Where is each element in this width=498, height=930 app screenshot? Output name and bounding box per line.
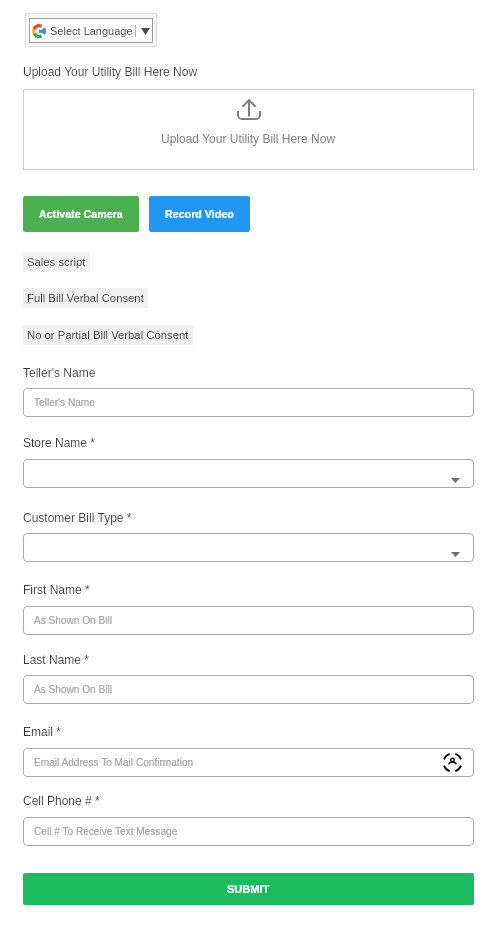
button[interactable]: No or Partial Bill Verbal Consent [23,325,193,345]
staticText: Sales script [27,256,86,269]
staticText: As Shown On Bill [34,684,112,695]
staticText: Store Name * [23,436,96,449]
staticText: First Name * [23,583,90,596]
button[interactable]: Teller's Name [23,388,474,417]
staticText: Select Language [50,25,133,37]
staticText: SUBMIT [227,883,270,895]
staticText: Upload Your Utility Bill Here Now [161,132,336,145]
button[interactable]: Email Address To Mail Confirmation [23,748,474,777]
staticText: Cell # To Receive Text Message [34,826,178,837]
button[interactable]: Open dropdown [23,459,474,488]
button[interactable]: SUBMIT [23,873,474,905]
button[interactable]: Select Language [25,13,157,47]
staticText: Record Video [165,208,234,220]
staticText: As Shown On Bill [34,615,112,626]
button[interactable]: Sales script [23,252,90,272]
button[interactable]: Cell # To Receive Text Message [23,817,474,846]
staticText: Email Address To Mail Confirmation [34,757,194,768]
staticText: No or Partial Bill Verbal Consent [27,329,189,342]
button[interactable]: Full Bill Verbal Consent [23,288,148,308]
staticText: Full Bill Verbal Consent [27,292,144,305]
button[interactable]: Upload Your Utility Bill Here Now [23,89,474,170]
button[interactable]: Open dropdown [23,533,474,562]
button[interactable]: As Shown On Bill [23,675,474,704]
staticText: Last Name * [23,653,90,666]
staticText: Teller's Name [23,366,96,379]
staticText: Upload Your Utility Bill Here Now [23,65,198,78]
button[interactable]: As Shown On Bill [23,606,474,635]
staticText: Email * [23,725,62,738]
staticText: Activate Camera [39,208,123,220]
button[interactable]: Activate Camera [23,196,139,232]
button[interactable]: Record Video [149,196,250,232]
staticText: Cell Phone # * [23,794,100,807]
staticText: Customer Bill Type * [23,511,132,524]
staticText: Teller's Name [34,397,95,408]
button[interactable]: Autofill contact [442,752,463,773]
